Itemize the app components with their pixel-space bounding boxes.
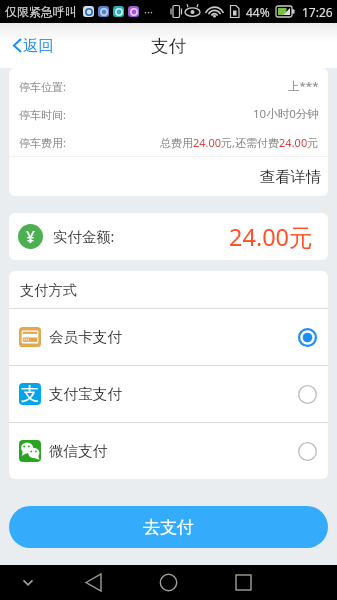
- button[interactable]: 会员卡支付: [9, 309, 328, 365]
- staticText: 24.00元: [229, 221, 313, 253]
- staticText: 44%: [246, 4, 270, 20]
- button[interactable]: 去支付: [9, 506, 328, 548]
- staticText: 微信支付: [49, 442, 108, 460]
- staticText: 会员卡支付: [49, 328, 122, 346]
- staticText: 支付: [151, 35, 186, 57]
- button[interactable]: 微信支付: [9, 423, 328, 479]
- staticText: ¥: [26, 226, 35, 247]
- staticText: 总费用24.00元,还需付费24.00元: [160, 135, 319, 150]
- staticText: 仅限紧急呼叫: [5, 4, 77, 19]
- staticText: ···: [144, 4, 153, 19]
- button[interactable]: 支: [9, 366, 328, 422]
- staticText: 实付金额:: [53, 227, 115, 247]
- staticText: 10小时0分钟: [253, 106, 319, 122]
- staticText: 停车位置:: [19, 79, 66, 94]
- staticText: 上***: [288, 78, 319, 94]
- staticText: 查看详情: [260, 167, 322, 186]
- button[interactable]: 返回: [0, 23, 64, 68]
- staticText: 支: [21, 383, 39, 405]
- button[interactable]: 查看详情: [9, 157, 328, 196]
- staticText: 支付方式: [20, 281, 77, 299]
- staticText: 去支付: [143, 517, 194, 538]
- staticText: 停车时间:: [19, 107, 66, 122]
- staticText: 停车费用:: [19, 135, 66, 150]
- staticText: 17:26: [302, 4, 333, 20]
- staticText: 支付宝支付: [49, 385, 122, 403]
- staticText: 返回: [23, 36, 54, 56]
